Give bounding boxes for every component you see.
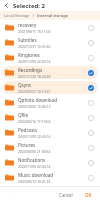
- staticText: 2020/11/09 22:43:14: [18, 59, 51, 64]
- staticText: Ringtones: [18, 52, 40, 58]
- staticText: Cancel: [59, 192, 73, 198]
- button[interactable]: Recordings: [2, 66, 98, 79]
- button[interactable]: Selected: [86, 68, 95, 77]
- button[interactable]: Select: [86, 38, 95, 47]
- button[interactable]: Music download: [2, 171, 98, 184]
- button[interactable]: Qphoto download: [2, 96, 98, 109]
- staticText: · · ·: [7, 192, 13, 197]
- button[interactable]: Internal storage: [37, 13, 68, 18]
- button[interactable]: OK: [82, 190, 95, 200]
- button[interactable]: Select: [86, 113, 95, 122]
- staticText: 2023/08/06 21:00:54: [18, 149, 51, 154]
- staticText: Recordings: [18, 67, 43, 73]
- staticText: 2021/11/23 18:20:48: [18, 74, 51, 79]
- staticText: 2022/12/31 10:31:46: [18, 44, 51, 49]
- staticText: Qfile: [18, 112, 29, 118]
- button[interactable]: Cancel: [56, 190, 76, 200]
- button[interactable]: Select: [86, 173, 95, 182]
- button[interactable]: Podcasts: [2, 126, 98, 139]
- staticText: Music download: [18, 172, 54, 178]
- staticText: Qsync: [18, 82, 32, 88]
- staticText: 2021/08/11 15:11:04: [18, 29, 51, 34]
- staticText: Subtitles: [18, 37, 37, 43]
- button[interactable]: Qsync: [2, 81, 98, 94]
- staticText: Internal storage: [37, 13, 68, 18]
- staticText: Podcasts: [18, 127, 38, 133]
- button[interactable]: Selected: [86, 83, 95, 92]
- staticText: 2020/11/09 22:43:14: [18, 134, 51, 139]
- button[interactable]: Select: [86, 158, 95, 167]
- staticText: Qphoto download: [18, 97, 57, 103]
- button[interactable]: Select: [86, 128, 95, 137]
- button[interactable]: Local Storage: [4, 13, 30, 18]
- button[interactable]: Back: [0, 0, 13, 11]
- button[interactable]: Qfile: [2, 111, 98, 124]
- button[interactable]: Select: [86, 98, 95, 107]
- button[interactable]: Ringtones: [2, 51, 98, 64]
- staticText: Selected: 2: [13, 2, 46, 10]
- button[interactable]: recovery: [2, 21, 98, 34]
- staticText: Notifications: [18, 157, 46, 163]
- staticText: 2023/06/27 10:13:31: [18, 89, 51, 94]
- button[interactable]: Select: [86, 53, 95, 62]
- button[interactable]: Select: [86, 143, 95, 152]
- staticText: OK: [85, 192, 92, 198]
- button[interactable]: Select: [86, 23, 95, 32]
- button[interactable]: Pictures: [2, 141, 98, 154]
- staticText: recovery: [18, 22, 37, 28]
- staticText: Local Storage: [4, 13, 30, 18]
- staticText: Pictures: [18, 142, 36, 148]
- staticText: 2022/06/16 17:10:02: [18, 119, 51, 124]
- staticText: 2022/18/03 15:06:13: [18, 104, 51, 109]
- staticText: 2020/11/09 22:43:14: [18, 164, 51, 169]
- button[interactable]: Subtitles: [2, 36, 98, 49]
- button[interactable]: Notifications: [2, 156, 98, 169]
- staticText: 2023/06/12 10:31:25: [18, 179, 51, 184]
